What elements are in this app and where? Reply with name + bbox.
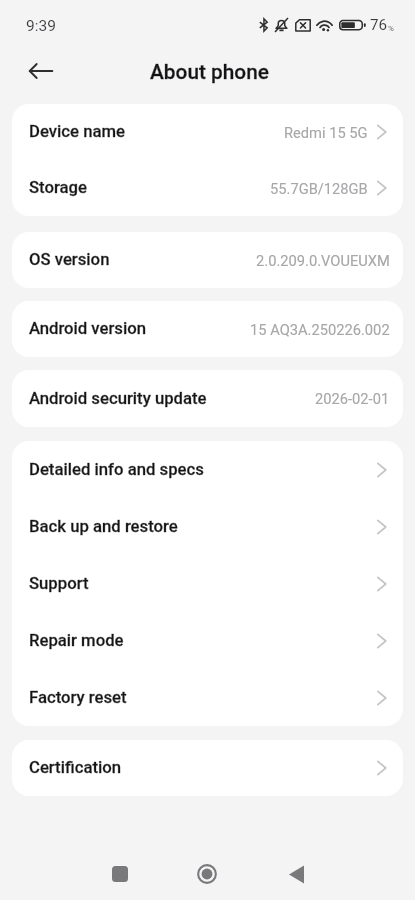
staticText: OS version: [29, 250, 110, 270]
button[interactable]: Back: [272, 850, 320, 898]
button[interactable]: OS version: [12, 232, 403, 288]
staticText: 2.0.209.0.VOUEUXM: [256, 252, 390, 269]
staticText: Detailed info and specs: [29, 460, 204, 480]
staticText: Factory reset: [29, 688, 127, 708]
staticText: Repair mode: [29, 631, 124, 651]
staticText: Storage: [29, 178, 87, 198]
staticText: Device name: [29, 122, 125, 142]
staticText: Certification: [29, 758, 122, 778]
button[interactable]: Repair mode: [12, 612, 403, 669]
button[interactable]: Storage: [12, 160, 403, 216]
staticText: Support: [29, 574, 89, 594]
staticText: Android version: [29, 319, 146, 339]
button[interactable]: Recent apps: [96, 850, 144, 898]
button[interactable]: Support: [12, 555, 403, 612]
button[interactable]: Back: [19, 49, 63, 93]
staticText: Certification: [29, 758, 122, 778]
staticText: Detailed info and specs: [29, 460, 204, 480]
staticText: About phone: [150, 60, 269, 84]
button[interactable]: Android security update: [12, 370, 403, 427]
button[interactable]: Certification: [12, 740, 403, 796]
staticText: Android security update: [29, 389, 207, 409]
staticText: Support: [29, 574, 89, 594]
staticText: Device name: [29, 122, 125, 142]
staticText: About phone: [150, 60, 269, 84]
staticText: Android security update: [29, 389, 207, 409]
button[interactable]: Home: [183, 850, 231, 898]
button[interactable]: Detailed info and specs: [12, 441, 403, 498]
staticText: Android version: [29, 319, 146, 339]
staticText: 2026-02-01: [315, 390, 390, 407]
button[interactable]: Back up and restore: [12, 498, 403, 555]
staticText: 76: [370, 16, 388, 34]
staticText: Repair mode: [29, 631, 124, 651]
button[interactable]: Android version: [12, 301, 403, 357]
staticText: %: [388, 24, 394, 33]
staticText: Redmi 15 5G: [284, 124, 368, 141]
staticText: OS version: [29, 250, 110, 270]
staticText: Storage: [29, 178, 87, 198]
staticText: Factory reset: [29, 688, 127, 708]
staticText: 55.7GB/128GB: [270, 180, 368, 197]
staticText: Back up and restore: [29, 517, 178, 537]
button[interactable]: Factory reset: [12, 669, 403, 726]
staticText: 15 AQ3A.250226.002: [250, 321, 390, 338]
button[interactable]: Device name: [12, 104, 403, 160]
staticText: 9:39: [26, 17, 56, 35]
staticText: Back up and restore: [29, 517, 178, 537]
